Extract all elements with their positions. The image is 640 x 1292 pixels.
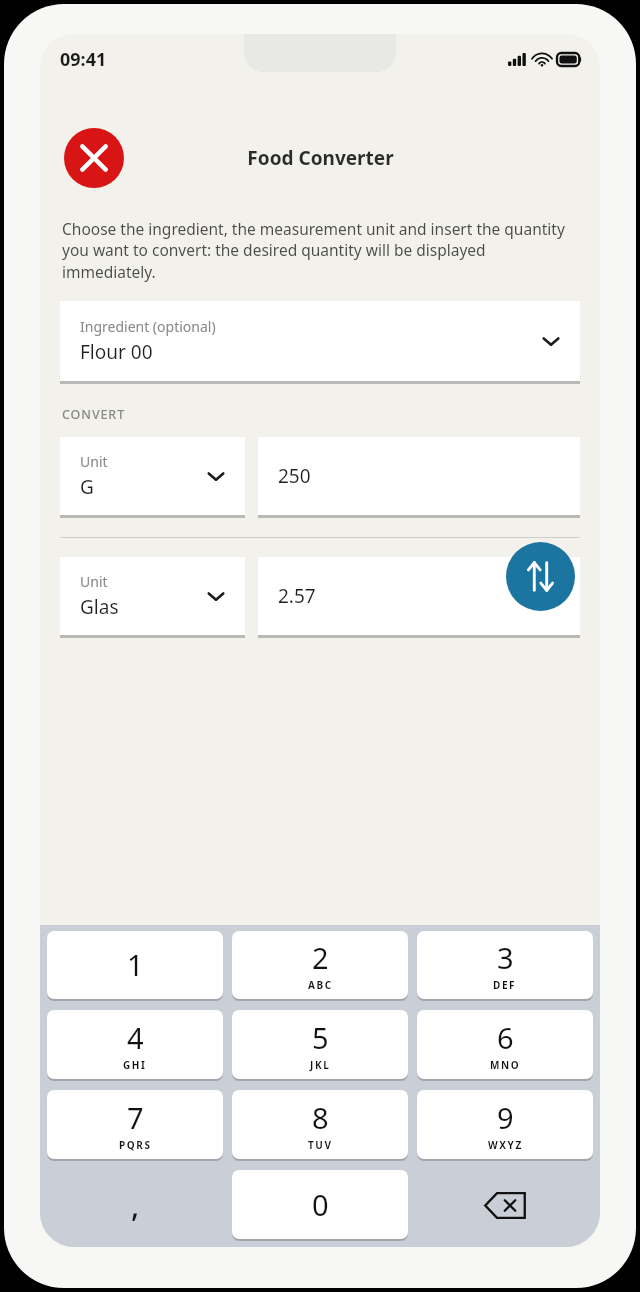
- button[interactable]: Unit: [60, 557, 245, 638]
- staticText: Choose the ingredient, the measurement u…: [62, 218, 578, 283]
- staticText: 1: [127, 945, 144, 984]
- staticText: PQRS: [119, 1138, 152, 1152]
- button[interactable]: 8: [232, 1090, 408, 1159]
- staticText: TUV: [308, 1138, 333, 1152]
- button[interactable]: 4: [47, 1010, 223, 1079]
- staticText: 4: [127, 1018, 144, 1057]
- staticText: 8: [312, 1098, 329, 1137]
- staticText: 9: [497, 1098, 514, 1137]
- staticText: Ingredient (optional): [80, 317, 216, 336]
- staticText: 2: [312, 938, 329, 977]
- staticText: G: [80, 474, 94, 500]
- button[interactable]: Backspace: [417, 1170, 593, 1241]
- button[interactable]: Ingredient (optional): [60, 301, 580, 384]
- staticText: CONVERT: [62, 406, 126, 423]
- staticText: WXYZ: [488, 1138, 523, 1152]
- staticText: Unit: [80, 572, 108, 591]
- button[interactable]: 7: [47, 1090, 223, 1159]
- button[interactable]: ,: [47, 1170, 223, 1241]
- staticText: DEF: [493, 978, 517, 992]
- button[interactable]: 2: [232, 931, 408, 999]
- staticText: Glas: [80, 594, 119, 620]
- staticText: Flour 00: [80, 339, 153, 365]
- staticText: 250: [278, 463, 311, 489]
- staticText: GHI: [123, 1058, 147, 1072]
- button[interactable]: 9: [417, 1090, 593, 1159]
- button[interactable]: 0: [232, 1170, 408, 1239]
- button[interactable]: 5: [232, 1010, 408, 1079]
- button[interactable]: Swap units: [506, 542, 575, 611]
- button[interactable]: 250: [258, 437, 580, 518]
- button[interactable]: Unit: [60, 437, 245, 518]
- staticText: 3: [497, 938, 514, 977]
- button[interactable]: 6: [417, 1010, 593, 1079]
- button[interactable]: Close: [64, 128, 124, 188]
- staticText: MNO: [490, 1058, 521, 1072]
- staticText: 0: [312, 1185, 329, 1224]
- staticText: ABC: [308, 978, 333, 992]
- staticText: 5: [312, 1018, 329, 1057]
- button[interactable]: 3: [417, 931, 593, 999]
- staticText: Food Converter: [247, 145, 394, 171]
- staticText: 6: [497, 1018, 514, 1057]
- staticText: ,: [131, 1185, 140, 1226]
- staticText: JKL: [310, 1058, 331, 1072]
- button[interactable]: 2.57: [258, 557, 580, 638]
- button[interactable]: 1: [47, 931, 223, 999]
- staticText: 09:41: [60, 47, 107, 72]
- staticText: 2.57: [278, 583, 316, 609]
- staticText: Unit: [80, 452, 108, 471]
- staticText: 7: [127, 1098, 144, 1137]
